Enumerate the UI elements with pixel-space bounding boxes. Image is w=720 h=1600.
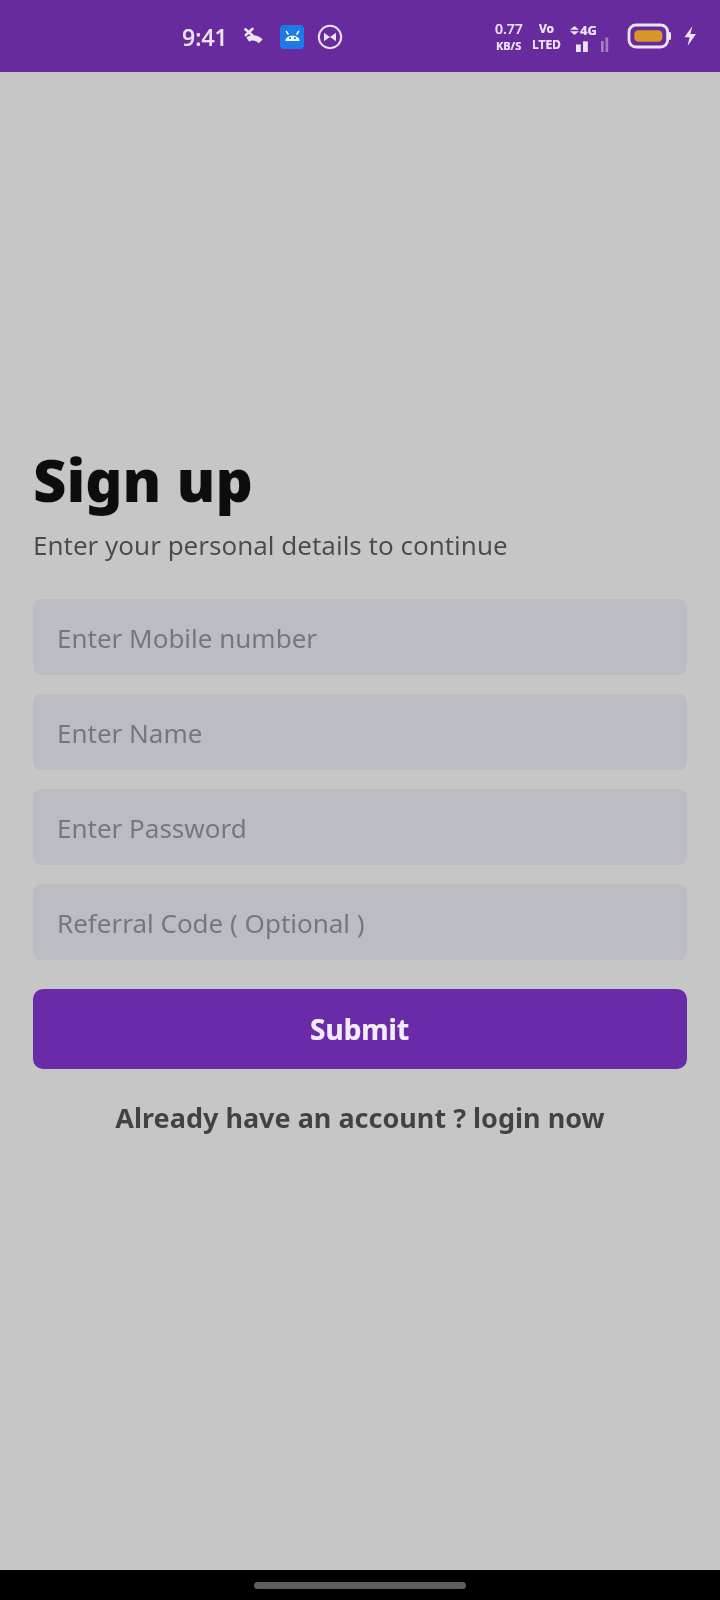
staticText: Referral Code ( Optional ) bbox=[57, 905, 365, 940]
button[interactable]: Enter Name bbox=[33, 694, 687, 770]
staticText: Vo bbox=[539, 20, 555, 36]
button[interactable]: Submit bbox=[33, 989, 687, 1069]
staticText: Already have an account ? login now bbox=[115, 1099, 605, 1136]
staticText: 4G bbox=[580, 21, 597, 39]
staticText: Enter Mobile number bbox=[57, 620, 318, 655]
staticText: Sign up bbox=[33, 440, 253, 519]
button[interactable]: Enter Password bbox=[33, 789, 687, 865]
staticText: Enter Password bbox=[57, 810, 247, 845]
button[interactable]: Referral Code ( Optional ) bbox=[33, 884, 687, 960]
button[interactable]: Enter Mobile number bbox=[33, 599, 687, 675]
staticText: Submit bbox=[310, 1010, 410, 1048]
staticText: 9:41 bbox=[182, 21, 228, 52]
staticText: KB/S bbox=[496, 38, 522, 53]
button[interactable]: Already have an account ? login now bbox=[33, 1093, 687, 1142]
staticText: 0.77 bbox=[495, 19, 523, 38]
staticText: Enter Name bbox=[57, 715, 203, 750]
staticText: LTED bbox=[532, 36, 561, 52]
staticText: Enter your personal details to continue bbox=[33, 527, 508, 562]
